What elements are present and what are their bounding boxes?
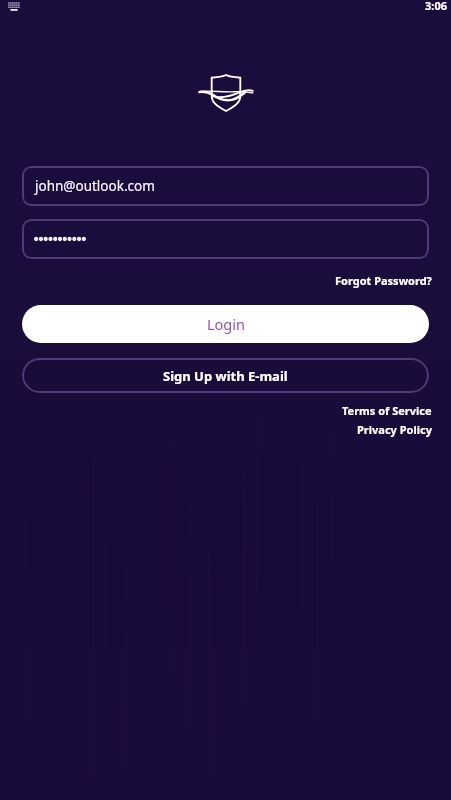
button[interactable]: Login (22, 305, 429, 343)
button[interactable]: Forgot Password? (335, 271, 432, 290)
other: Keyboard (8, 2, 20, 11)
staticText: john@outlook.com (35, 177, 155, 195)
staticText: Login (207, 314, 245, 334)
other: App logo (199, 75, 253, 111)
button[interactable]: Terms of Service (342, 403, 432, 418)
button[interactable] (22, 219, 429, 259)
button[interactable]: Sign Up with E-mail (22, 358, 429, 393)
button[interactable]: john@outlook.com (22, 166, 429, 206)
button[interactable]: Privacy Policy (357, 422, 432, 437)
staticText: 3:06 (425, 0, 447, 13)
staticText: Sign Up with E-mail (163, 367, 288, 385)
